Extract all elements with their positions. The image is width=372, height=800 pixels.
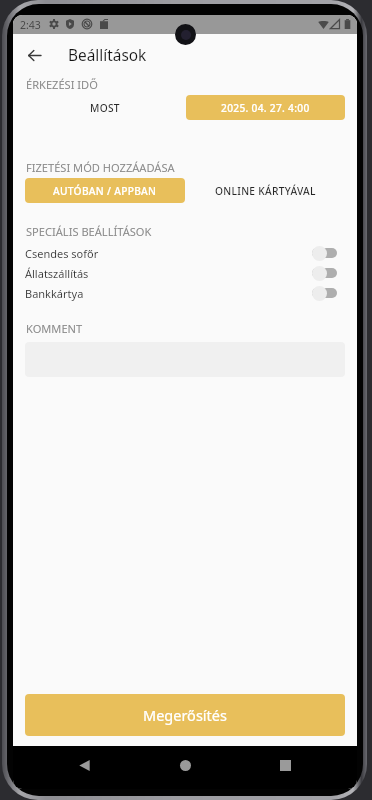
button[interactable]: ONLINE KÁRTYÁVAL	[186, 178, 345, 203]
button[interactable]: Csendes sofőr	[25, 243, 345, 263]
staticText: FIZETÉSI MÓD HOZZÁADÁSA	[26, 160, 175, 175]
button[interactable]: 2025. 04. 27. 4:00	[186, 95, 345, 120]
button[interactable]: Megerősítés	[25, 694, 345, 736]
staticText: 2025. 04. 27. 4:00	[221, 101, 310, 115]
button[interactable]: AUTÓBAN / APPBAN	[25, 178, 185, 203]
staticText: MOST	[90, 101, 120, 115]
staticText: ONLINE KÁRTYÁVAL	[215, 184, 316, 198]
staticText: AUTÓBAN / APPBAN	[53, 184, 157, 198]
staticText: Megerősítés	[143, 705, 227, 725]
staticText: KOMMENT	[26, 321, 83, 336]
staticText: 2:43	[20, 18, 41, 32]
button[interactable]: Back	[22, 43, 47, 68]
button[interactable]: Home	[169, 749, 201, 781]
button[interactable]: MOST	[25, 95, 185, 120]
staticText: Bankkártya	[25, 286, 84, 301]
button[interactable]: Recents	[269, 749, 301, 781]
staticText: ÉRKEZÉSI IDŐ	[26, 77, 98, 92]
staticText: Csendes sofőr	[25, 246, 99, 261]
staticText: Állatszállítás	[25, 266, 89, 281]
staticText: Beállítások	[68, 45, 147, 66]
button[interactable]: Back	[68, 749, 100, 781]
staticText: SPECIÁLIS BEÁLLÍTÁSOK	[26, 224, 152, 239]
button[interactable]: Állatszállítás	[25, 263, 345, 283]
button[interactable]: Bankkártya	[25, 283, 345, 303]
